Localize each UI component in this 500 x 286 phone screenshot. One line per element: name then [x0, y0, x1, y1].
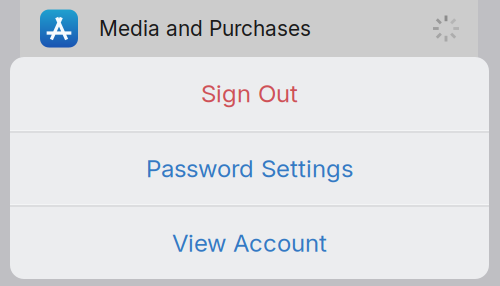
button[interactable]: Password Settings [10, 133, 489, 204]
staticText: Sign Out [201, 79, 298, 108]
button[interactable]: Sign Out [10, 57, 489, 130]
staticText: Media and Purchases [99, 16, 311, 41]
staticText: View Account [172, 228, 327, 258]
button[interactable]: View Account [10, 207, 489, 279]
staticText: Password Settings [146, 154, 353, 183]
